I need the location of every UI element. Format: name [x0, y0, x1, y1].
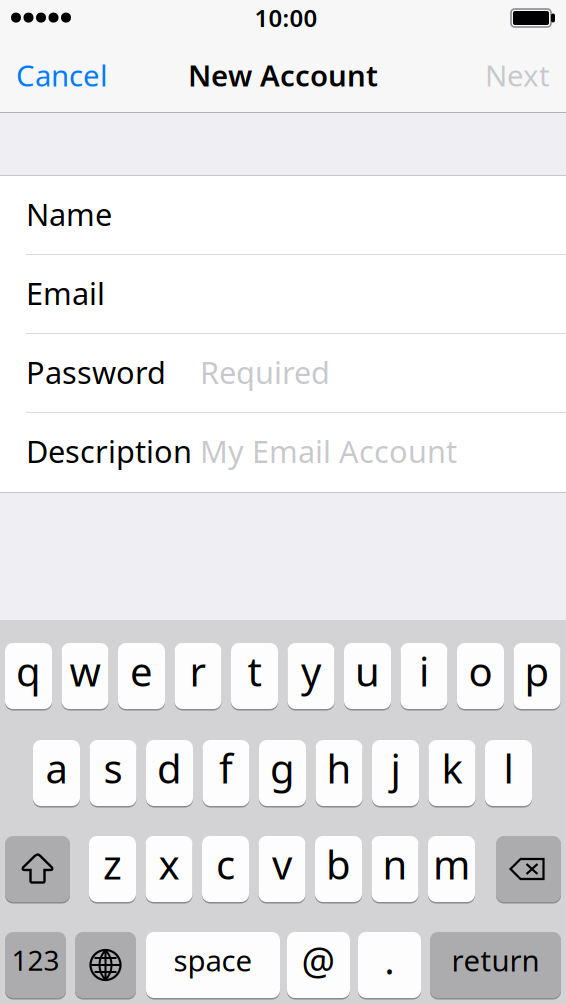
- staticText: x: [158, 837, 179, 890]
- staticText: Description: [26, 431, 192, 471]
- button[interactable]: k: [428, 739, 475, 807]
- button[interactable]: Next: [470, 49, 550, 101]
- button[interactable]: o: [457, 642, 504, 710]
- staticText: d: [157, 741, 182, 794]
- staticText: m: [433, 837, 470, 890]
- button[interactable]: r: [174, 642, 221, 710]
- staticText: z: [103, 837, 122, 890]
- button[interactable]: v: [258, 835, 305, 903]
- staticText: Password: [26, 352, 166, 392]
- staticText: j: [390, 741, 400, 794]
- staticText: @: [301, 935, 335, 985]
- button[interactable]: q: [5, 642, 52, 710]
- staticText: w: [69, 644, 100, 697]
- staticText: New Account: [188, 55, 378, 94]
- button[interactable]: Password: [0, 334, 566, 413]
- staticText: e: [130, 644, 153, 697]
- button[interactable]: c: [202, 835, 249, 903]
- staticText: Email: [26, 273, 105, 313]
- button[interactable]: Email: [0, 255, 566, 334]
- button[interactable]: l: [485, 739, 532, 807]
- button[interactable]: Shift: [5, 835, 70, 903]
- button[interactable]: 123: [5, 931, 66, 999]
- button[interactable]: p: [513, 642, 560, 710]
- button[interactable]: return: [430, 931, 561, 999]
- staticText: g: [270, 741, 295, 794]
- staticText: b: [326, 837, 351, 890]
- button[interactable]: s: [89, 739, 136, 807]
- button[interactable]: space: [146, 931, 280, 999]
- staticText: Required: [200, 352, 330, 392]
- staticText: a: [45, 741, 67, 794]
- button[interactable]: t: [231, 642, 278, 710]
- button[interactable]: y: [287, 642, 334, 710]
- staticText: o: [468, 644, 492, 697]
- button[interactable]: z: [89, 835, 136, 903]
- button[interactable]: Name: [0, 176, 566, 255]
- button[interactable]: Description: [0, 413, 566, 492]
- staticText: t: [247, 644, 261, 697]
- staticText: q: [16, 644, 41, 697]
- staticText: n: [382, 837, 407, 890]
- staticText: return: [451, 940, 539, 979]
- button[interactable]: f: [202, 739, 249, 807]
- staticText: v: [272, 837, 292, 890]
- staticText: i: [419, 644, 429, 697]
- button[interactable]: i: [400, 642, 447, 710]
- staticText: s: [103, 741, 122, 794]
- staticText: .: [384, 935, 394, 985]
- staticText: space: [173, 940, 252, 979]
- staticText: Name: [26, 194, 112, 234]
- button[interactable]: j: [372, 739, 419, 807]
- button[interactable]: Cancel: [16, 49, 146, 101]
- button[interactable]: h: [315, 739, 362, 807]
- button[interactable]: Delete: [496, 835, 561, 903]
- button[interactable]: Next keyboard: [75, 931, 136, 999]
- staticText: 123: [11, 941, 59, 979]
- button[interactable]: .: [358, 931, 421, 999]
- button[interactable]: u: [344, 642, 391, 710]
- button[interactable]: a: [33, 739, 80, 807]
- button[interactable]: b: [315, 835, 362, 903]
- staticText: My Email Account: [200, 431, 457, 471]
- button[interactable]: g: [259, 739, 306, 807]
- button[interactable]: w: [61, 642, 108, 710]
- staticText: Next: [485, 55, 550, 94]
- staticText: l: [503, 741, 513, 794]
- staticText: k: [441, 741, 462, 794]
- staticText: y: [301, 644, 321, 697]
- button[interactable]: e: [118, 642, 165, 710]
- button[interactable]: x: [145, 835, 192, 903]
- button[interactable]: @: [287, 931, 350, 999]
- staticText: Cancel: [16, 55, 108, 94]
- staticText: c: [216, 837, 235, 890]
- staticText: 10:00: [254, 2, 317, 34]
- staticText: u: [355, 644, 380, 697]
- staticText: h: [326, 741, 351, 794]
- staticText: f: [219, 741, 233, 794]
- button[interactable]: d: [146, 739, 193, 807]
- staticText: p: [524, 644, 549, 697]
- staticText: r: [189, 644, 206, 697]
- button[interactable]: n: [371, 835, 418, 903]
- button[interactable]: m: [428, 835, 475, 903]
